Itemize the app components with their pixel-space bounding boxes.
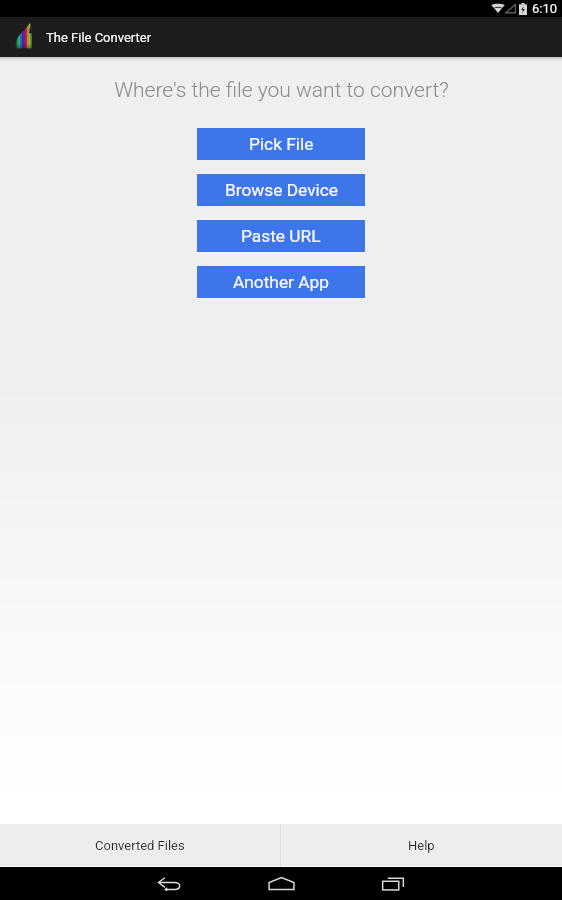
button[interactable]: Help [281,824,562,866]
staticText: Paste URL [241,226,321,246]
button[interactable]: Back [146,867,192,900]
button[interactable]: Another App [197,266,365,298]
button[interactable]: The File Converter [0,17,164,57]
staticText: Help [408,838,435,853]
staticText: Another App [233,272,329,292]
staticText: Where's the file you want to convert? [114,78,449,103]
staticText: Converted Files [95,838,185,853]
button[interactable]: Pick File [197,128,365,160]
button[interactable]: Recent apps [370,867,416,900]
staticText: Pick File [249,134,314,154]
staticText: 6:10 [532,1,558,16]
staticText: Browse Device [225,180,338,200]
button[interactable]: Home [258,867,304,900]
button[interactable]: Paste URL [197,220,365,252]
button[interactable]: Browse Device [197,174,365,206]
staticText: The File Converter [46,30,152,45]
button[interactable]: Converted Files [0,824,280,866]
